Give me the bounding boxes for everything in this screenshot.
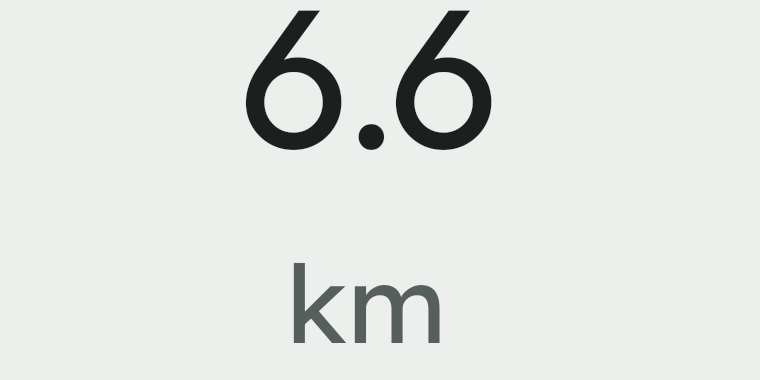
button[interactable]: 6.6 (0, 0, 760, 380)
staticText: 6.6 (238, 0, 493, 199)
staticText: km (286, 235, 447, 370)
